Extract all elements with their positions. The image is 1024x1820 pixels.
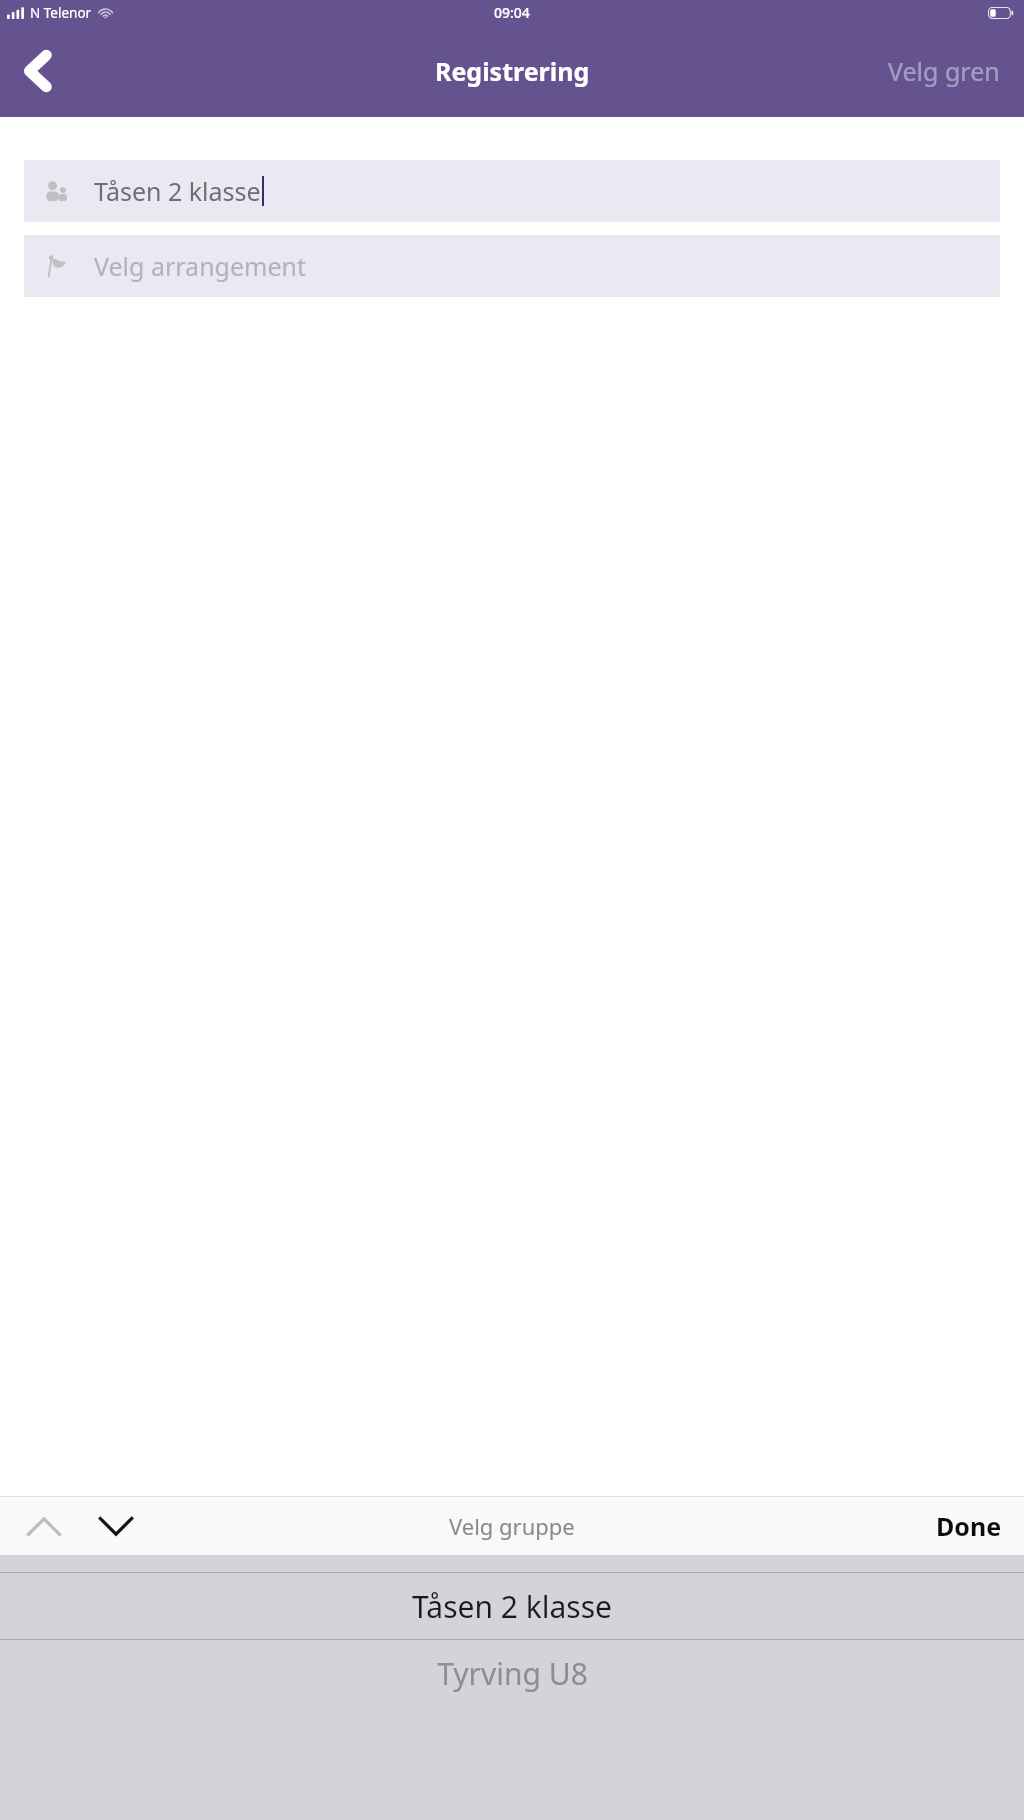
button[interactable]: Velg gren <box>882 44 1006 98</box>
button[interactable]: Velg arrangement <box>24 235 1000 297</box>
button[interactable]: Previous field <box>18 1500 70 1552</box>
staticText: Velg arrangement <box>94 249 307 283</box>
button[interactable]: Tyrving U8 <box>0 1640 1024 1706</box>
button[interactable]: Tåsen 2 klasse <box>24 160 1000 222</box>
staticText: Done <box>936 1509 1002 1543</box>
button[interactable]: Done <box>926 1499 1012 1553</box>
staticText: 09:04 <box>494 3 530 22</box>
staticText: Velg gren <box>888 54 1000 88</box>
staticText: N Telenor <box>30 4 92 22</box>
button[interactable]: Tåsen 2 klasse <box>0 1573 1024 1639</box>
staticText: Tyrving U8 <box>437 1653 588 1694</box>
staticText: Velg gruppe <box>449 1511 575 1541</box>
staticText: Registrering <box>435 54 590 88</box>
staticText: Tåsen 2 klasse <box>412 1586 612 1627</box>
staticText: Tåsen 2 klasse <box>94 174 261 208</box>
button[interactable]: Back <box>10 43 66 99</box>
button[interactable]: Next field <box>90 1500 142 1552</box>
